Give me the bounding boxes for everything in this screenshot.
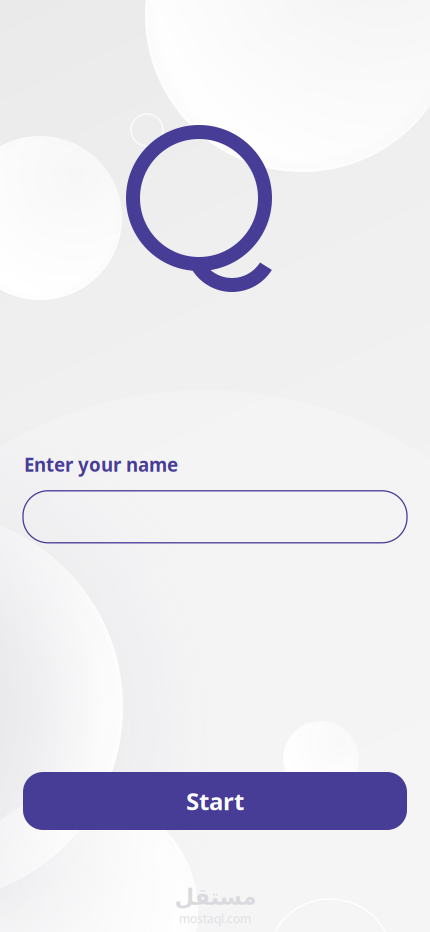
button[interactable]: Start	[23, 772, 407, 830]
staticText: Start	[186, 785, 244, 817]
staticText: mostaql.com	[179, 911, 251, 927]
staticText: مستقل	[174, 884, 256, 910]
staticText: Enter your name	[24, 452, 178, 477]
